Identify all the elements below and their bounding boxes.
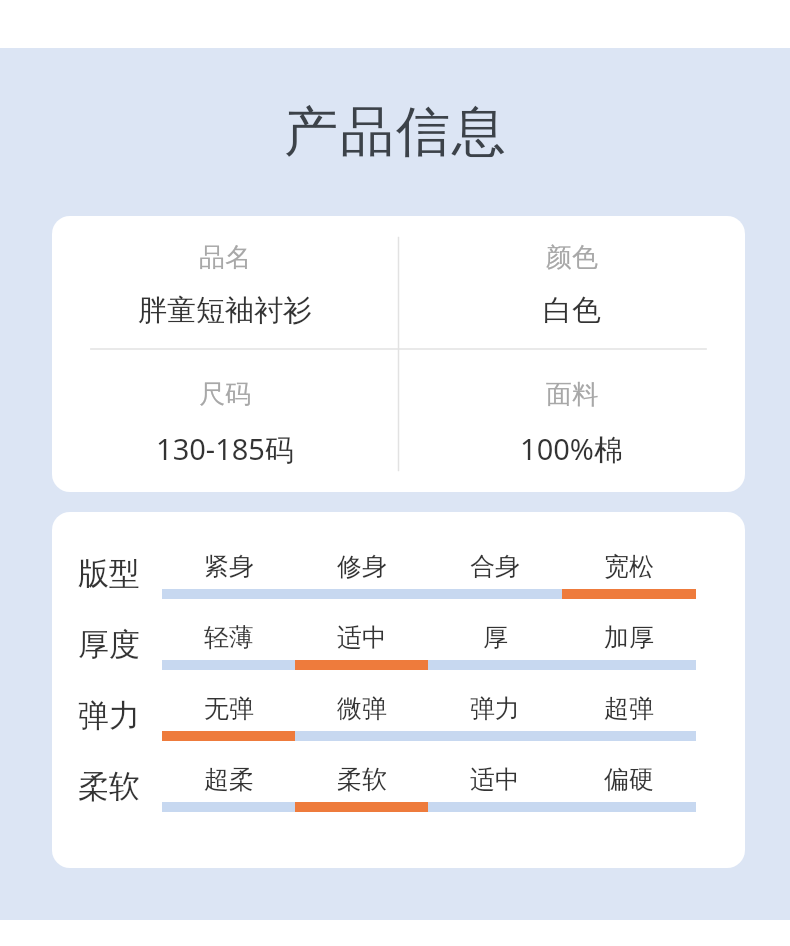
button[interactable]: 厚度 xyxy=(78,619,696,670)
staticText: 弹力 xyxy=(470,693,520,724)
button[interactable]: 颜色 xyxy=(398,216,745,354)
staticText: 版型 xyxy=(78,554,140,593)
staticText: 超弹 xyxy=(604,693,654,724)
staticText: 合身 xyxy=(470,551,520,582)
staticText: 适中 xyxy=(337,622,387,653)
button[interactable]: 版型 xyxy=(52,512,745,868)
staticText: 弹力 xyxy=(78,696,140,735)
staticText: 适中 xyxy=(470,764,520,795)
staticText: 颜色 xyxy=(546,241,598,274)
button[interactable]: 品名 xyxy=(52,216,398,354)
button[interactable]: 版型 xyxy=(78,548,696,599)
staticText: 产品信息 xyxy=(283,98,507,166)
staticText: 修身 xyxy=(337,551,387,582)
staticText: 加厚 xyxy=(604,622,654,653)
staticText: 轻薄 xyxy=(204,622,254,653)
staticText: 白色 xyxy=(543,292,601,329)
staticText: 胖童短袖衬衫 xyxy=(138,292,312,329)
staticText: 尺码 xyxy=(199,378,251,411)
button[interactable]: 品名 xyxy=(52,216,745,492)
staticText: 偏硬 xyxy=(604,764,654,795)
staticText: 无弹 xyxy=(204,693,254,724)
staticText: 厚度 xyxy=(78,625,140,664)
staticText: 品名 xyxy=(199,241,251,274)
staticText: 宽松 xyxy=(604,551,654,582)
staticText: 厚 xyxy=(483,622,508,653)
staticText: 面料 xyxy=(546,378,598,411)
button[interactable]: 面料 xyxy=(398,354,745,492)
staticText: 柔软 xyxy=(78,767,140,806)
staticText: 柔软 xyxy=(337,764,387,795)
staticText: 超柔 xyxy=(204,764,254,795)
staticText: 100%棉 xyxy=(520,429,623,469)
button[interactable]: 尺码 xyxy=(52,354,398,492)
staticText: 微弹 xyxy=(337,693,387,724)
button[interactable]: 弹力 xyxy=(78,690,696,741)
staticText: 130-185码 xyxy=(156,429,294,469)
button[interactable]: 柔软 xyxy=(78,761,696,812)
staticText: 紧身 xyxy=(204,551,254,582)
